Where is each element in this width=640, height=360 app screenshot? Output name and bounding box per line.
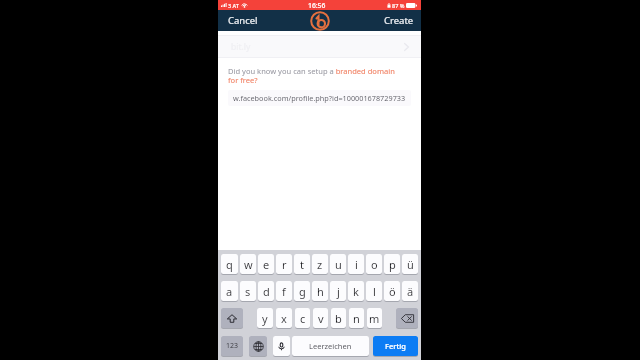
button[interactable]: n [349,308,364,328]
button[interactable]: Done [373,336,418,356]
button[interactable]: Switch keyboard [249,336,267,356]
staticText: r [282,257,287,272]
staticText: m [369,311,380,326]
button[interactable]: j [330,281,346,301]
button[interactable]: Bitly [310,11,330,31]
staticText: 16:56 [308,1,326,10]
button[interactable]: c [295,308,310,328]
button[interactable]: r [276,254,292,274]
staticText: 87 % [392,2,405,9]
staticText: y [262,311,268,326]
staticText: ä [407,284,414,299]
staticText: k [353,284,359,299]
staticText: Create [384,14,414,27]
button[interactable]: p [384,254,400,274]
staticText: b [335,311,342,326]
staticText: j [337,284,340,299]
button[interactable]: Backspace [396,308,418,328]
staticText: t [300,257,304,272]
staticText: o [371,257,378,272]
staticText: h [317,284,324,299]
button[interactable]: u [330,254,346,274]
staticText: n [353,311,360,326]
staticText: w [244,257,253,272]
button[interactable]: e [258,254,274,274]
staticText: w.facebook.com/profile.php?id=1000016787… [233,93,406,103]
button[interactable]: d [258,281,274,301]
staticText: g [299,284,306,299]
staticText: e [263,257,270,272]
staticText: 123 [226,341,239,351]
button[interactable]: ä [402,281,418,301]
staticText: ü [407,257,414,272]
staticText: q [226,257,233,272]
button[interactable]: h [312,281,328,301]
staticText: 3 AT [228,2,239,9]
staticText: Fertig [385,341,406,351]
button[interactable]: g [294,281,310,301]
button[interactable]: t [294,254,310,274]
button[interactable]: k [348,281,364,301]
staticText: s [245,284,251,299]
staticText: a [226,284,233,299]
button[interactable]: ü [402,254,418,274]
button[interactable]: x [276,308,292,328]
staticText: c [300,311,306,326]
button[interactable]: Dictate [273,336,290,356]
staticText: l [373,284,376,299]
button[interactable]: w [240,254,256,274]
button[interactable]: v [313,308,328,328]
button[interactable]: b [331,308,346,328]
button[interactable]: m [367,308,382,328]
button[interactable]: s [240,281,256,301]
button[interactable]: a [221,281,238,301]
staticText: bit.ly [231,41,251,53]
staticText: d [263,284,270,299]
staticText: f [282,284,286,299]
staticText: z [317,257,323,272]
button[interactable]: ö [384,281,400,301]
button[interactable]: f [276,281,292,301]
button[interactable]: Create [382,11,416,30]
button[interactable]: Cancel [226,11,260,30]
staticText: Did you know you can setup a branded dom… [228,66,403,85]
button[interactable]: w.facebook.com/profile.php?id=1000016787… [228,90,411,106]
button[interactable]: o [366,254,382,274]
staticText: Leerzeichen [309,341,352,351]
button[interactable]: i [348,254,364,274]
staticText: x [281,311,287,326]
button[interactable]: Shift [221,308,243,328]
staticText: p [389,257,396,272]
staticText: Cancel [228,14,258,27]
button[interactable]: y [257,308,273,328]
button[interactable]: l [366,281,382,301]
button[interactable]: 123 keys [221,336,243,356]
button[interactable]: z [312,254,328,274]
staticText: i [355,257,358,272]
button[interactable]: Space [292,336,369,356]
button[interactable]: q [221,254,238,274]
staticText: u [335,257,342,272]
staticText: v [318,311,324,326]
staticText: ö [389,284,396,299]
